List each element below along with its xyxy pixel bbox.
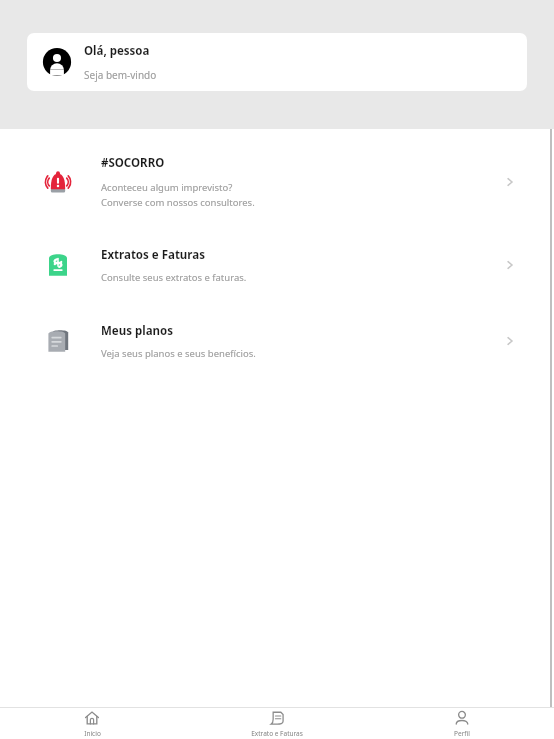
staticText: Olá, pessoa — [84, 43, 150, 59]
staticText: Seja bem-vindo — [84, 68, 157, 82]
staticText: Perfil — [454, 729, 470, 738]
button[interactable]: #SOCORRO — [23, 144, 531, 220]
button[interactable]: Meus planos — [23, 311, 531, 371]
staticText: Veja seus planos e seus benefícios. — [101, 347, 256, 360]
staticText: Meus planos — [101, 323, 173, 339]
button[interactable]: Extrato e Faturas — [184, 708, 369, 739]
staticText: Início — [84, 729, 101, 738]
button[interactable]: Início — [0, 708, 184, 739]
staticText: #SOCORRO — [101, 155, 165, 171]
staticText: Extratos e Faturas — [101, 247, 205, 263]
staticText: Extrato e Faturas — [251, 729, 303, 738]
staticText: Converse com nossos consultores. — [101, 196, 255, 209]
button[interactable]: Olá, pessoa — [27, 33, 527, 91]
staticText: Aconteceu algum imprevisto? — [101, 181, 233, 194]
staticText: Consulte seus extratos e faturas. — [101, 271, 247, 284]
button[interactable]: Perfil — [369, 708, 554, 739]
button[interactable]: Extratos e Faturas — [23, 235, 531, 295]
